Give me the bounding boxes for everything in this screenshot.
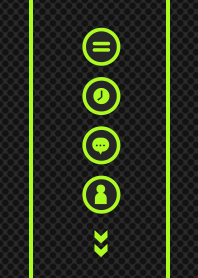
button[interactable]: Menu: [82, 28, 120, 66]
button[interactable]: Profile: [82, 176, 120, 214]
button[interactable]: Scroll down: [91, 230, 111, 258]
button[interactable]: Messages: [82, 126, 120, 164]
button[interactable]: Recent activity: [82, 77, 120, 115]
